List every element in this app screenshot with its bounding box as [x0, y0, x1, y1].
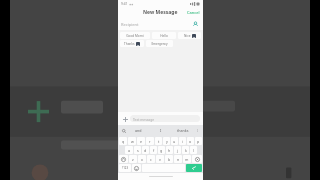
staticText: and: [135, 128, 142, 133]
button[interactable]: Text message: [130, 115, 200, 122]
button[interactable]: Send: [186, 164, 202, 172]
button[interactable]: g: [158, 146, 165, 154]
staticText: ?123: [122, 166, 129, 170]
button[interactable]: u: [171, 137, 178, 145]
button[interactable]: f: [150, 146, 157, 154]
staticText: Emergency: [151, 42, 168, 46]
staticText: f: [153, 148, 155, 153]
staticText: Good Morni: [126, 34, 144, 38]
staticText: p: [197, 139, 200, 144]
staticText: a: [128, 148, 131, 153]
staticText: b: [168, 157, 171, 162]
staticText: Thanks: [124, 42, 135, 46]
button[interactable]: c: [147, 155, 155, 163]
staticText: e: [140, 139, 143, 144]
button[interactable]: and: [127, 128, 150, 133]
staticText: d: [144, 148, 147, 153]
staticText: g: [160, 148, 163, 153]
button[interactable]: Emoji: [132, 164, 141, 172]
button[interactable]: Emergency: [146, 40, 173, 47]
button[interactable]: Hello: [152, 32, 176, 39]
staticText: k: [185, 148, 187, 153]
button[interactable]: b: [165, 155, 173, 163]
staticText: m: [185, 157, 189, 162]
staticText: M: [193, 35, 196, 38]
button[interactable]: k: [182, 146, 189, 154]
button[interactable]: r: [146, 137, 154, 145]
staticText: I: [160, 128, 162, 133]
button[interactable]: Thanks: [120, 40, 144, 47]
staticText: Recipient: [121, 22, 139, 27]
staticText: u: [173, 139, 176, 144]
staticText: Hello: [160, 34, 168, 38]
button[interactable]: Choose contact: [191, 20, 200, 29]
button[interactable]: Backspace: [192, 155, 202, 163]
button[interactable]: Good Morni: [120, 32, 150, 39]
button[interactable]: thanks: [172, 128, 194, 133]
button[interactable]: n: [174, 155, 182, 163]
button[interactable]: q: [119, 137, 127, 145]
staticText: h: [168, 148, 171, 153]
staticText: c: [150, 157, 152, 162]
button[interactable]: I: [150, 128, 172, 133]
staticText: Cancel: [187, 10, 200, 15]
staticText: t: [158, 139, 160, 144]
button[interactable]: a: [125, 146, 133, 154]
staticText: j: [177, 148, 178, 153]
button[interactable]: More options: [194, 127, 201, 134]
staticText: l: [193, 148, 194, 153]
staticText: z: [132, 157, 134, 162]
staticText: q: [122, 139, 125, 144]
button[interactable]: Add attachment: [121, 115, 129, 123]
staticText: 9:41: [121, 2, 128, 6]
button[interactable]: Recipient: [118, 18, 203, 30]
button[interactable]: Shift: [119, 155, 128, 163]
staticText: n: [177, 157, 180, 162]
button[interactable]: j: [174, 146, 181, 154]
staticText: w: [131, 139, 134, 144]
staticText: o: [189, 139, 192, 144]
staticText: Nice: [184, 34, 191, 38]
staticText: y: [166, 139, 168, 144]
staticText: New Message: [143, 9, 178, 16]
button[interactable]: z: [129, 155, 137, 163]
button[interactable]: e: [137, 137, 145, 145]
button[interactable]: x: [138, 155, 146, 163]
button[interactable]: h: [166, 146, 173, 154]
button[interactable]: o: [187, 137, 194, 145]
button[interactable]: t: [155, 137, 162, 145]
button[interactable]: d: [142, 146, 149, 154]
staticText: r: [149, 139, 151, 144]
button[interactable]: i: [179, 137, 186, 145]
button[interactable]: v: [156, 155, 164, 163]
button[interactable]: p: [195, 137, 202, 145]
button[interactable]: s: [134, 146, 141, 154]
staticText: i: [182, 139, 183, 144]
button[interactable]: Nice: [178, 32, 201, 39]
button[interactable]: Cancel: [184, 8, 203, 17]
staticText: s: [137, 148, 139, 153]
staticText: Text message: [133, 117, 155, 121]
button[interactable]: Search: [120, 127, 127, 134]
staticText: x: [141, 157, 143, 162]
button[interactable]: m: [183, 155, 191, 163]
button[interactable]: ?123: [119, 164, 131, 172]
staticText: v: [159, 157, 161, 162]
button[interactable]: w: [128, 137, 136, 145]
staticText: M: [137, 43, 140, 46]
staticText: thanks: [177, 128, 189, 133]
button[interactable]: l: [190, 146, 197, 154]
button[interactable]: y: [163, 137, 170, 145]
